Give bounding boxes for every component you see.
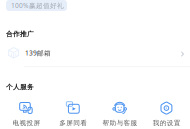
staticText: 合作推广 bbox=[6, 30, 34, 38]
staticText: 我的设置 bbox=[153, 119, 181, 127]
staticText: 个人服务 bbox=[6, 83, 34, 91]
button[interactable]: 139邮箱 bbox=[0, 42, 190, 64]
button[interactable]: 多屏同看 bbox=[50, 100, 97, 128]
staticText: 帮助与客服 bbox=[102, 119, 137, 127]
button[interactable]: 帮助与客服 bbox=[96, 100, 143, 128]
staticText: 100%赢超值好礼 bbox=[11, 1, 64, 10]
button[interactable]: 我的设置 bbox=[143, 100, 190, 128]
button[interactable]: 电视投屏 bbox=[3, 100, 50, 128]
staticText: 电视投屏 bbox=[12, 119, 40, 127]
button[interactable]: 100%赢超值好礼 bbox=[6, 0, 67, 11]
staticText: 139邮箱 bbox=[25, 49, 51, 57]
staticText: 多屏同看 bbox=[59, 119, 87, 127]
